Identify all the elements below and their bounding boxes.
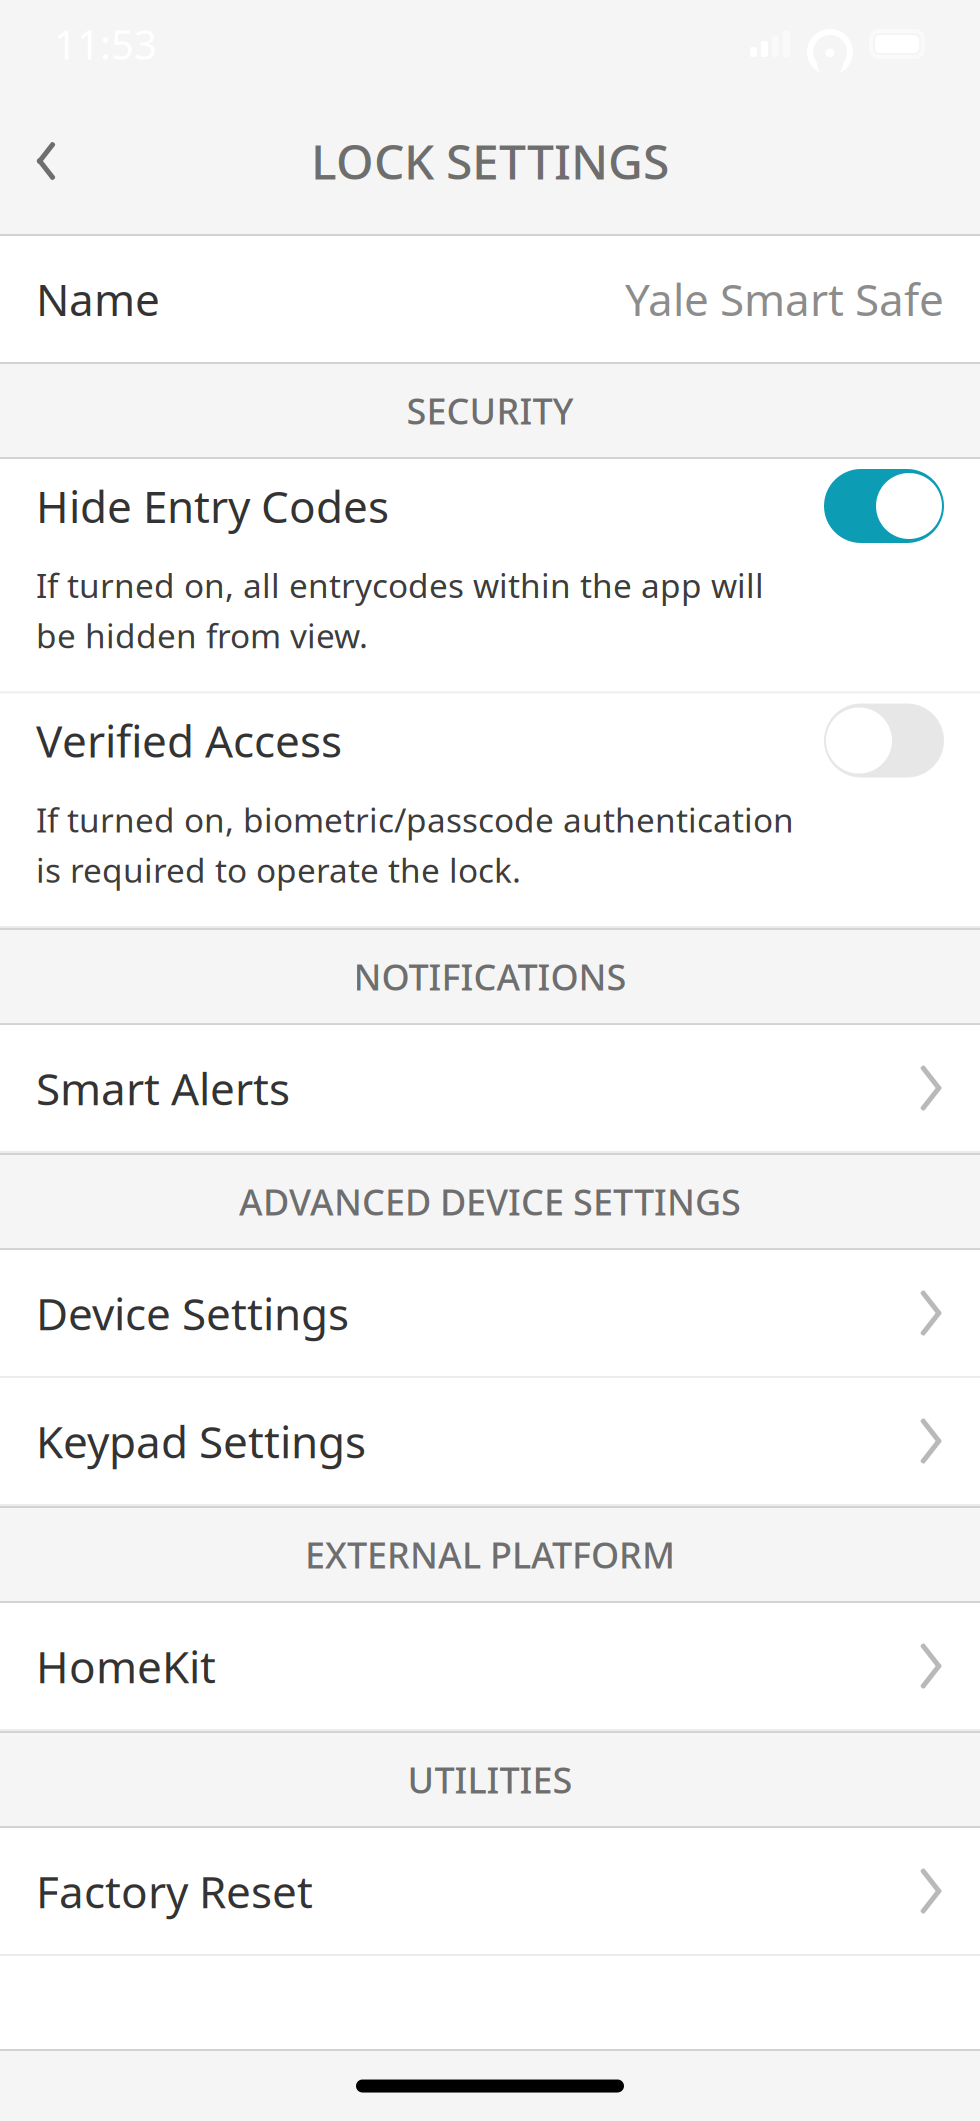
button[interactable]: Name: [0, 236, 980, 362]
staticText: EXTERNAL PLATFORM: [305, 1531, 675, 1578]
staticText: NOTIFICATIONS: [353, 953, 626, 1000]
staticText: LOCK SETTINGS: [311, 129, 669, 193]
button[interactable]: Smart Alerts: [0, 1025, 980, 1153]
staticText: Verified Access: [36, 711, 342, 770]
staticText: Name: [36, 270, 160, 328]
button[interactable]: Verified Access: [824, 703, 944, 777]
staticText: If turned on, biometric/passcode authent…: [36, 797, 794, 842]
staticText: UTILITIES: [407, 1756, 572, 1803]
staticText: Keypad Settings: [36, 1412, 366, 1470]
staticText: ADVANCED DEVICE SETTINGS: [239, 1178, 741, 1225]
staticText: Smart Alerts: [36, 1059, 290, 1117]
staticText: Factory Reset: [36, 1862, 313, 1920]
button[interactable]: Hide Entry Codes: [824, 469, 944, 543]
staticText: Device Settings: [36, 1284, 349, 1342]
staticText: Hide Entry Codes: [36, 477, 389, 535]
staticText: SECURITY: [406, 387, 573, 434]
button[interactable]: Factory Reset: [0, 1828, 980, 1956]
button[interactable]: Keypad Settings: [0, 1378, 980, 1506]
staticText: be hidden from view.: [36, 613, 368, 658]
staticText: Yale Smart Safe: [625, 270, 944, 328]
staticText: 11:53: [54, 17, 157, 70]
button[interactable]: Device Settings: [0, 1250, 980, 1378]
staticText: is required to operate the lock.: [36, 848, 521, 892]
staticText: HomeKit: [36, 1637, 216, 1695]
staticText: If turned on, all entrycodes within the …: [36, 563, 764, 607]
button[interactable]: HomeKit: [0, 1603, 980, 1731]
button[interactable]: Back: [0, 118, 82, 204]
